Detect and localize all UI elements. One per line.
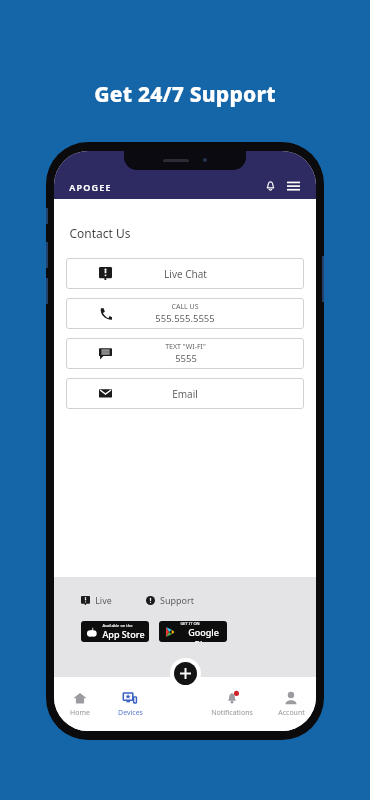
staticText: Support: [160, 594, 194, 606]
staticText: Get 24/7 Support: [94, 80, 276, 109]
button[interactable]: Home: [54, 677, 105, 731]
staticText: Email: [172, 387, 198, 401]
button[interactable]: Notifications: [198, 677, 266, 731]
button[interactable]: Devices: [105, 677, 155, 731]
button[interactable]: Email: [66, 378, 304, 409]
button[interactable]: CALL US: [66, 298, 304, 329]
button[interactable]: Menu: [285, 177, 301, 193]
button[interactable]: Live Chat: [66, 258, 304, 289]
staticText: 5555: [175, 352, 197, 365]
staticText: Available on the: [102, 623, 133, 628]
staticText: App Store: [102, 628, 145, 640]
staticText: Live Chat: [164, 267, 207, 281]
button[interactable]: Google Play: [159, 621, 227, 642]
button[interactable]: Notifications: [262, 177, 278, 193]
button[interactable]: Account: [266, 677, 316, 731]
staticText: APOGEE: [69, 181, 112, 193]
button[interactable]: Live: [81, 594, 112, 606]
staticText: CALL US: [171, 302, 199, 312]
staticText: Google Play: [180, 626, 227, 642]
staticText: TEXT "WI-FI": [165, 342, 206, 352]
staticText: Home: [70, 708, 90, 718]
staticText: Live: [95, 594, 112, 606]
staticText: GET IT ON: [180, 621, 200, 626]
staticText: Account: [278, 708, 305, 718]
button[interactable]: App Store: [81, 621, 149, 642]
button[interactable]: Add: [174, 662, 197, 685]
button[interactable]: Support: [146, 594, 194, 606]
staticText: 555.555.5555: [155, 312, 215, 325]
staticText: Contact Us: [69, 225, 131, 241]
staticText: Notifications: [211, 708, 253, 718]
staticText: Devices: [118, 708, 143, 718]
button[interactable]: TEXT "WI-FI": [66, 338, 304, 369]
